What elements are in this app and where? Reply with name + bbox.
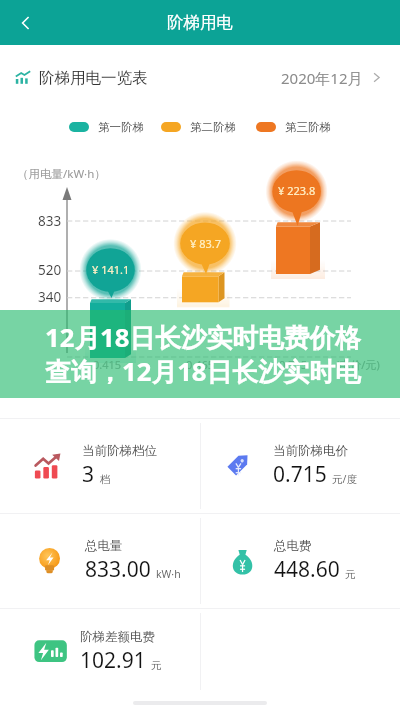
staticText: 340 xyxy=(38,288,62,306)
staticText: 448.60 xyxy=(274,555,340,584)
staticText: 520 xyxy=(38,261,62,279)
button[interactable]: 当前阶梯电价 xyxy=(200,419,400,513)
staticText: （用电量/kW·h） xyxy=(17,166,106,182)
staticText: 102.91 xyxy=(80,646,146,675)
staticText: 总电费 xyxy=(274,538,312,554)
staticText: 当前阶梯电价 xyxy=(273,443,348,459)
staticText: 元 xyxy=(345,568,356,581)
button[interactable]: 阶梯用电一览表 xyxy=(14,61,382,94)
staticText: 第三阶梯 xyxy=(285,120,331,134)
button[interactable]: 总电量 xyxy=(0,514,200,608)
staticText: 3 xyxy=(82,460,95,489)
staticText: ¥ 83.7 xyxy=(190,236,221,251)
staticText: 第二阶梯 xyxy=(190,120,236,134)
staticText: 元 xyxy=(151,659,162,672)
staticText: ¥ 223.8 xyxy=(278,183,316,198)
staticText: 2020年12月 xyxy=(281,68,363,88)
button[interactable]: Back xyxy=(6,3,46,43)
staticText: 当前阶梯档位 xyxy=(82,443,157,459)
staticText: kW·h xyxy=(156,567,181,581)
staticText: 档 xyxy=(100,473,111,486)
button[interactable]: 当前阶梯档位 xyxy=(0,419,200,513)
staticText: ¥ 141.1 xyxy=(92,262,130,277)
button[interactable]: 总电费 xyxy=(200,514,400,608)
staticText: 查询，12月18日长沙实时电 xyxy=(45,354,361,389)
staticText: 0.415 xyxy=(93,357,122,372)
staticText: 总电量 xyxy=(85,538,123,554)
staticText: 阶梯差额电费 xyxy=(80,629,155,645)
staticText: 833.00 xyxy=(85,555,151,584)
button[interactable]: 阶梯差额电费 xyxy=(0,609,200,694)
staticText: 元/度 xyxy=(332,472,357,486)
staticText: 0.715 xyxy=(273,460,327,489)
staticText: 阶梯用电一览表 xyxy=(39,68,148,88)
staticText: 833 xyxy=(38,212,62,230)
staticText: 0.715 xyxy=(279,357,308,372)
staticText: 第一阶梯 xyxy=(98,120,144,134)
staticText: 12月18日长沙实时电费价格 xyxy=(45,320,361,355)
staticText: 阶梯用电 xyxy=(167,12,233,33)
staticText: 0.465 xyxy=(186,357,215,372)
staticText: (电价/元) xyxy=(336,357,380,372)
